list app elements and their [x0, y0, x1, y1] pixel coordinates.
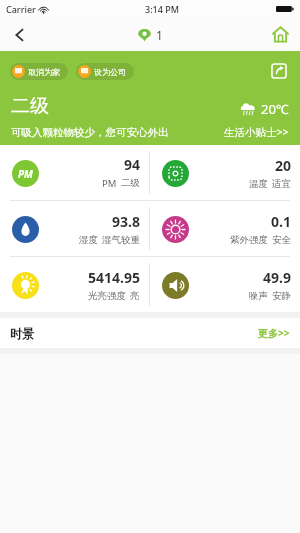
staticText: 1	[156, 27, 163, 43]
button[interactable]: 49.9	[150, 257, 300, 312]
button[interactable]: 设为公司	[76, 63, 134, 80]
staticText: 94	[123, 155, 140, 174]
button[interactable]: 1	[138, 27, 163, 43]
button[interactable]: Back	[0, 18, 40, 51]
staticText: 3:14 PM	[145, 3, 179, 15]
staticText: 二级	[121, 177, 140, 189]
staticText: 更多>>	[258, 326, 290, 340]
staticText: 安全	[272, 234, 291, 246]
button[interactable]: 20	[150, 145, 300, 200]
button[interactable]: 取消为家	[10, 63, 68, 80]
staticText: 光亮强度	[88, 290, 126, 302]
button[interactable]: 生活小贴士>>	[224, 125, 289, 139]
staticText: 93.8	[112, 212, 140, 231]
staticText: 设为公司	[94, 67, 126, 77]
button[interactable]: PM	[0, 145, 149, 200]
staticText: 亮	[130, 290, 140, 302]
button[interactable]: 93.8	[0, 201, 149, 256]
staticText: 0.1	[271, 212, 291, 231]
staticText: 可吸入颗粒物较少，您可安心外出	[11, 126, 169, 139]
staticText: 时景	[10, 326, 34, 341]
button[interactable]: 时景	[0, 318, 300, 348]
button[interactable]: 5414.95	[0, 257, 149, 312]
staticText: 适宜	[272, 178, 291, 190]
staticText: 紫外强度	[230, 234, 268, 246]
staticText: 湿度	[79, 234, 98, 246]
staticText: 20	[274, 156, 291, 175]
staticText: 20℃	[261, 100, 289, 118]
staticText: 噪声	[249, 290, 268, 302]
staticText: Carrier	[6, 3, 36, 15]
button[interactable]: Home	[260, 18, 300, 51]
staticText: 温度	[249, 178, 268, 190]
staticText: 湿气较重	[102, 234, 140, 246]
button[interactable]: Share	[266, 58, 292, 84]
staticText: PM	[102, 177, 117, 190]
staticText: 取消为家	[28, 67, 60, 77]
staticText: PM	[18, 167, 33, 181]
button[interactable]: 0.1	[150, 201, 300, 256]
staticText: 二级	[11, 94, 49, 118]
staticText: 安静	[272, 290, 291, 302]
staticText: 49.9	[263, 268, 291, 287]
staticText: 5414.95	[88, 268, 140, 287]
